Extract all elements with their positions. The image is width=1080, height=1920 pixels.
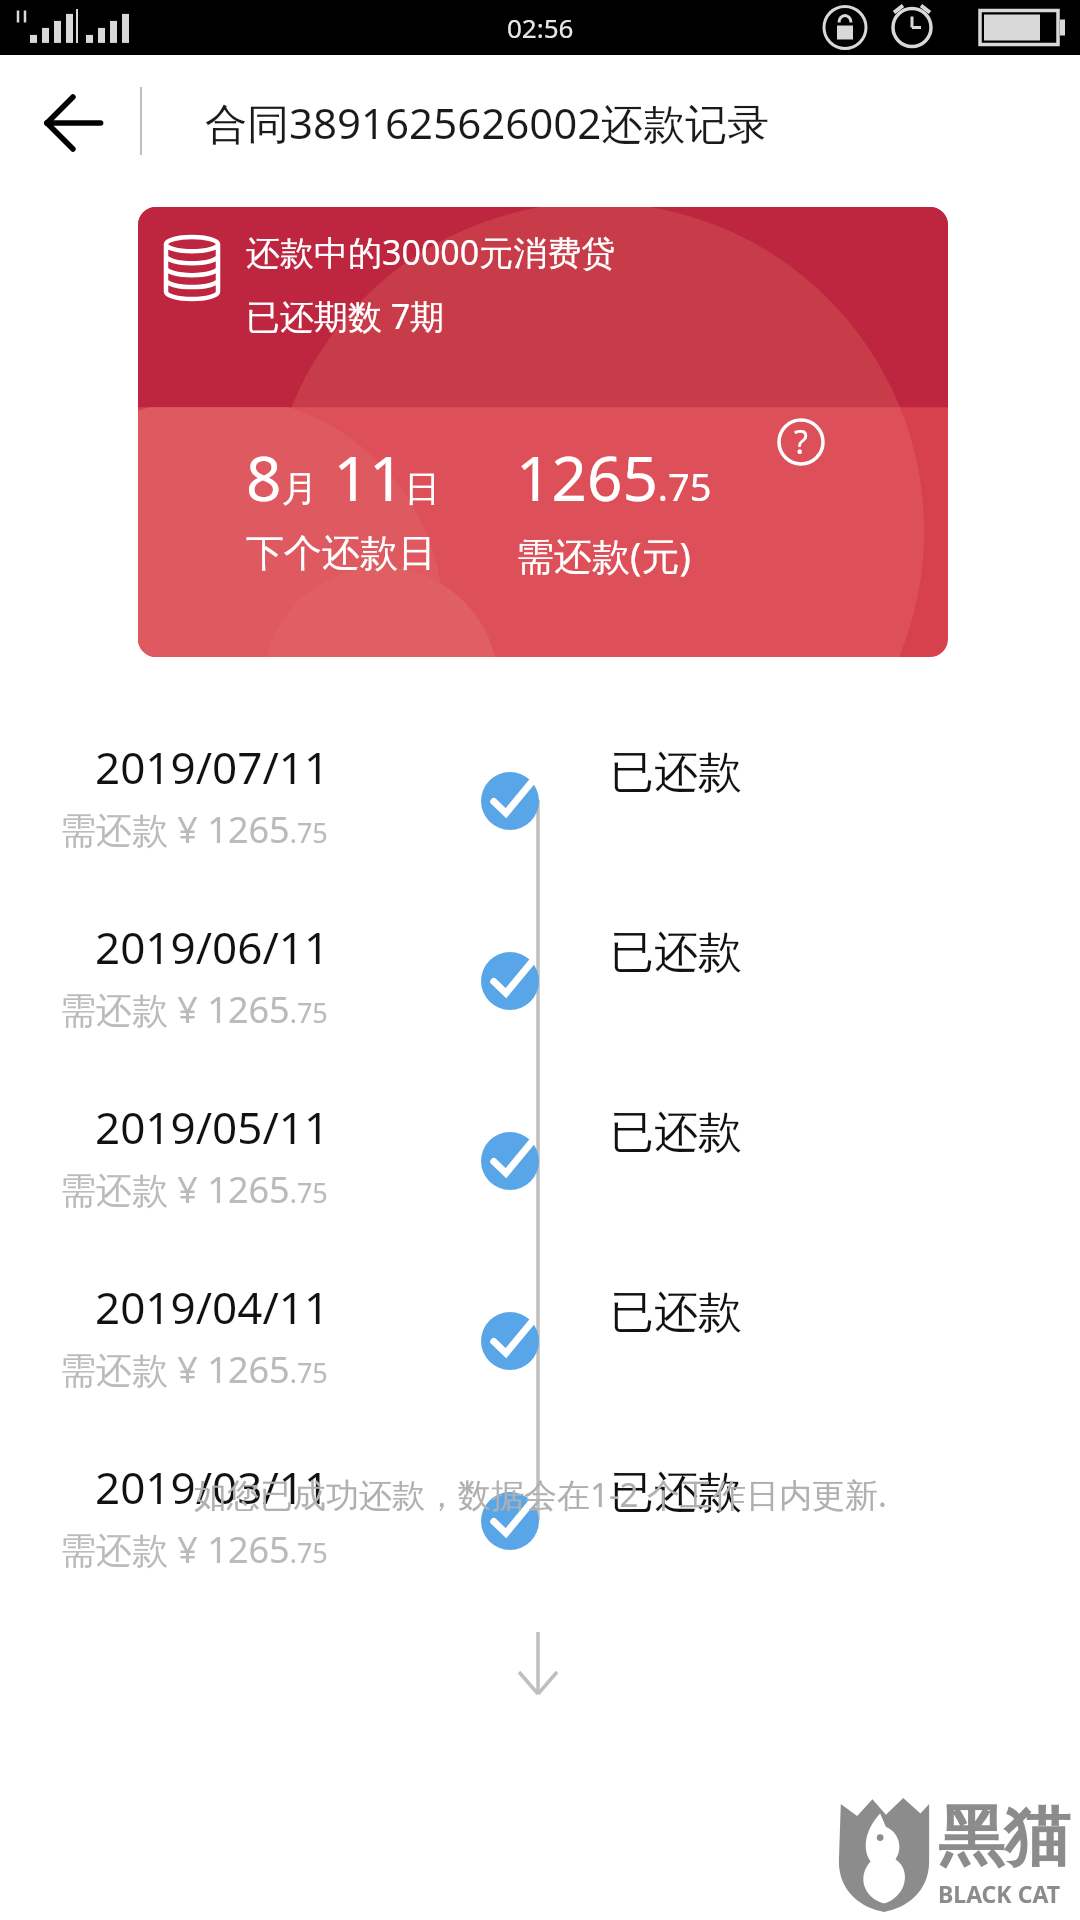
staticText: 需还款 ¥ 1265.75 [60,985,328,1034]
staticText: 黑猫 [938,1795,1070,1878]
button[interactable]: 2019/06/11 [0,907,1080,1087]
staticText: 需还款(元) [516,529,691,581]
staticText: 2019/05/11 [95,1097,330,1157]
staticText: 需还款 ¥ 1265.75 [60,1525,328,1574]
staticText: 2019/03/11 [95,1457,330,1517]
staticText: 1265.75 [516,435,712,519]
staticText: 还款中的30000元消费贷 [246,229,616,275]
button[interactable]: Back [32,79,120,167]
staticText: 需还款 ¥ 1265.75 [60,1345,328,1394]
button[interactable]: 2019/07/11 [0,727,1080,907]
staticText: 02:56 [507,10,574,45]
button[interactable]: 还款中的30000元消费贷 [138,207,948,657]
staticText: 已还款 [610,1285,742,1340]
staticText: 2019/07/11 [95,737,330,797]
staticText: 8月 11日 [246,435,441,519]
staticText: 2019/06/11 [95,917,330,977]
staticText: ? [794,420,808,464]
staticText: 已还款 [610,925,742,980]
staticText: BLACK CAT [938,1878,1060,1909]
staticText: 已还期数 7期 [246,293,445,339]
staticText: 2019/04/11 [95,1277,330,1337]
button[interactable]: Help [776,417,826,467]
button[interactable]: 2019/03/11 [0,1447,1080,1627]
staticText: 需还款 ¥ 1265.75 [60,805,328,854]
staticText: 已还款 [610,745,742,800]
button[interactable]: 2019/05/11 [0,1087,1080,1267]
staticText: 合同3891625626002还款记录 [205,94,770,151]
button[interactable]: 2019/04/11 [0,1267,1080,1447]
staticText: 已还款 [610,1465,742,1520]
staticText: 如您已成功还款，数据会在1-2 个工作日内更新. [194,1472,887,1517]
staticText: 需还款 ¥ 1265.75 [60,1165,328,1214]
staticText: 下个还款日 [246,529,436,577]
staticText: 已还款 [610,1105,742,1160]
